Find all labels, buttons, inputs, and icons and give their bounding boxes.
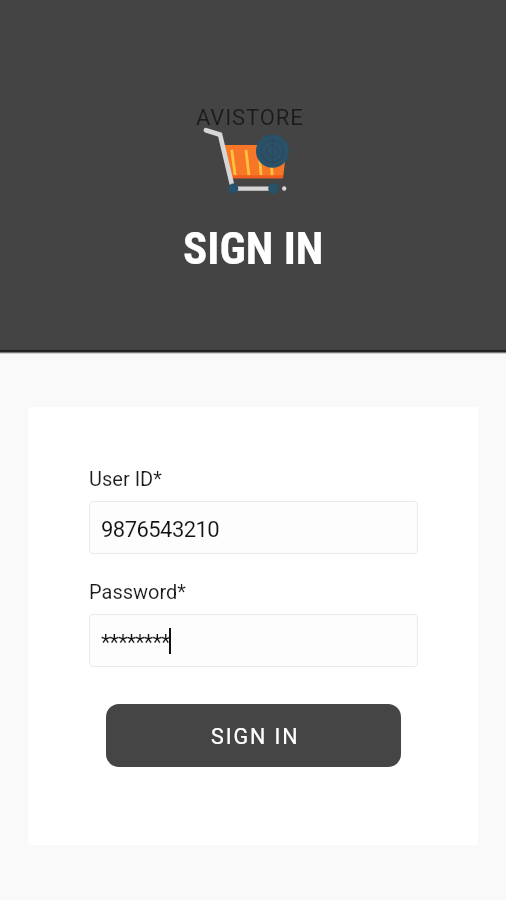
staticText: SIGN IN bbox=[183, 222, 324, 275]
other: AviStore logo bbox=[198, 126, 300, 196]
staticText: SIGN IN bbox=[211, 724, 300, 749]
button[interactable]: ******** bbox=[89, 614, 418, 667]
staticText: ******** bbox=[101, 630, 170, 656]
staticText: 9876543210 bbox=[101, 517, 220, 543]
button[interactable]: 9876543210 bbox=[89, 501, 418, 554]
button[interactable]: SIGN IN bbox=[106, 704, 401, 767]
staticText: AVISTORE bbox=[196, 105, 304, 131]
staticText: User ID* bbox=[89, 467, 162, 490]
staticText: Password* bbox=[89, 580, 186, 603]
